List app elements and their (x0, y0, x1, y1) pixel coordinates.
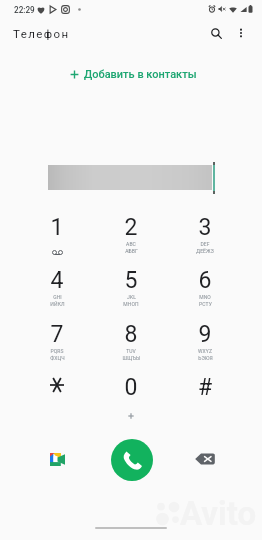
button[interactable]: 0 (94, 365, 168, 418)
staticText: 1 (20, 214, 94, 241)
staticText: DEF (200, 241, 210, 247)
button[interactable]: 5 (94, 258, 168, 311)
staticText: MNO (199, 294, 211, 300)
staticText: 8 (94, 321, 168, 348)
staticText: WXYZ (198, 348, 212, 354)
button[interactable]: More options (229, 21, 253, 45)
button[interactable]: Video call (43, 445, 71, 473)
staticText: 3 (168, 214, 242, 241)
staticText: 22:29 (14, 5, 35, 15)
button[interactable]: # (168, 365, 242, 418)
staticText: 6 (168, 267, 242, 294)
button[interactable] (20, 365, 94, 418)
button[interactable]: Call (111, 439, 153, 481)
staticText: PQRS (50, 348, 64, 354)
button[interactable]: 6 (168, 258, 242, 311)
staticText: GHI (53, 294, 62, 300)
staticText: 2 (94, 214, 168, 241)
staticText: JKL (127, 294, 136, 300)
button[interactable]: 4 (20, 258, 94, 311)
staticText: ДЕЁЖЗ (196, 248, 214, 254)
button[interactable]: 9 (168, 312, 242, 365)
staticText: Телефон (13, 27, 70, 40)
staticText: Avito (180, 494, 257, 533)
staticText: ABC (126, 241, 136, 247)
staticText: 4 (20, 267, 94, 294)
button[interactable]: Backspace (191, 445, 219, 473)
staticText: 7 (20, 321, 94, 348)
staticText: АБВГ (125, 248, 138, 254)
staticText: ФХЦЧ (50, 355, 65, 361)
staticText: TUV (126, 348, 136, 354)
button[interactable]: 8 (94, 312, 168, 365)
staticText: ЬЭЮЯ (198, 355, 213, 361)
staticText: РСТУ (199, 301, 212, 307)
staticText: Добавить в контакты (84, 68, 197, 81)
staticText: ШЩЪЫ (122, 355, 141, 361)
button[interactable]: 3 (168, 205, 242, 258)
staticText: 5 (94, 267, 168, 294)
staticText: # (168, 374, 242, 401)
button[interactable]: Добавить в контакты (64, 65, 203, 84)
staticText: ИЙКЛ (50, 301, 65, 307)
staticText: 9 (168, 321, 242, 348)
button[interactable]: 1 (20, 205, 94, 258)
button[interactable]: Search (204, 21, 228, 45)
staticText: 0 (94, 374, 168, 401)
button[interactable]: 7 (20, 312, 94, 365)
staticText: МНОП (123, 301, 139, 307)
button[interactable]: 2 (94, 205, 168, 258)
